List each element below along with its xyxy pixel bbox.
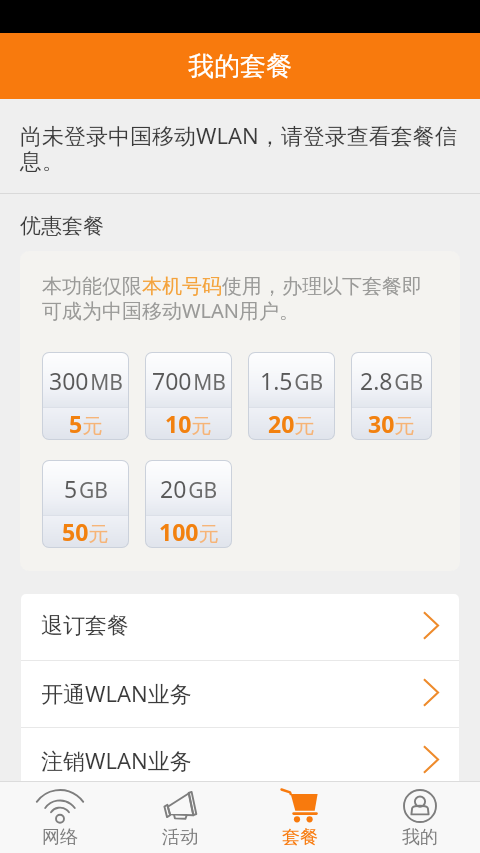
staticText: 10元	[165, 408, 212, 439]
staticText: 50元	[62, 516, 109, 547]
staticText: 退订套餐	[41, 612, 129, 640]
button[interactable]: 开通WLAN业务	[21, 661, 459, 727]
staticText: 本功能仅限本机号码使用，办理以下套餐即可成为中国移动WLAN用户。	[42, 274, 432, 324]
staticText: 1.5 GB	[260, 365, 324, 396]
other: 我的	[396, 789, 444, 823]
staticText: 2.8 GB	[360, 365, 424, 396]
staticText: 尚未登录中国移动WLAN，请登录查看套餐信息。	[20, 120, 460, 175]
button[interactable]: 套餐	[240, 782, 360, 853]
staticText: 20 GB	[160, 473, 218, 504]
button[interactable]: 注销WLAN业务	[21, 728, 459, 794]
staticText: 活动	[162, 826, 198, 849]
button[interactable]: 700 MB	[145, 352, 232, 440]
button[interactable]: 20 GB	[145, 460, 232, 548]
button[interactable]: 退订套餐	[21, 594, 459, 660]
staticText: 套餐	[282, 826, 318, 849]
staticText: 30元	[368, 408, 415, 439]
staticText: 5元	[69, 408, 103, 439]
button[interactable]: 网络	[0, 782, 120, 853]
button[interactable]: 2.8 GB	[351, 352, 432, 440]
staticText: 700 MB	[152, 365, 226, 396]
button[interactable]: 活动	[120, 782, 240, 853]
staticText: 我的	[402, 826, 438, 849]
button[interactable]: 300 MB	[42, 352, 129, 440]
staticText: 优惠套餐	[20, 213, 104, 239]
staticText: 100元	[159, 516, 219, 547]
other: 活动	[156, 789, 204, 823]
staticText: 注销WLAN业务	[41, 745, 192, 775]
button[interactable]: 1.5 GB	[248, 352, 335, 440]
other: 网络	[36, 789, 84, 823]
staticText: 300 MB	[49, 365, 123, 396]
staticText: 网络	[42, 826, 78, 849]
button[interactable]: 5 GB	[42, 460, 129, 548]
other: 套餐	[276, 789, 324, 823]
button[interactable]: 我的	[360, 782, 480, 853]
staticText: 我的套餐	[188, 50, 292, 83]
staticText: 5 GB	[64, 473, 108, 504]
staticText: 20元	[268, 408, 315, 439]
staticText: 开通WLAN业务	[41, 678, 192, 708]
